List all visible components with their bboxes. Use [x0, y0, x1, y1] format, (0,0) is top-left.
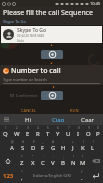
staticText: RUN [70, 108, 79, 113]
staticText: C [41, 159, 45, 167]
button[interactable]: Record target [41, 50, 63, 59]
staticText: E [26, 130, 30, 138]
staticText: 7 [68, 126, 70, 130]
staticText: H [61, 144, 66, 152]
staticText: ) [93, 140, 94, 144]
staticText: Please fill the call Sequence for| [3, 8, 100, 18]
staticText: D [31, 144, 36, 152]
button[interactable]: Hi [12, 114, 43, 125]
button[interactable]: Backspace [88, 153, 103, 168]
staticText: 6 [57, 126, 59, 130]
staticText: L [91, 144, 95, 152]
staticText: 10:45 [90, 1, 101, 6]
staticText: A [10, 144, 14, 152]
staticText: N [71, 159, 76, 167]
button[interactable]: Skype To Go [1, 26, 102, 43]
staticText: $ [33, 140, 35, 144]
staticText: ° [21, 169, 23, 174]
button[interactable]: Number to call [0, 65, 103, 85]
staticText: 4 [37, 126, 39, 130]
staticText: F [41, 144, 45, 152]
staticText: W [14, 130, 20, 138]
staticText: G [51, 144, 56, 152]
staticText: 9 [88, 126, 90, 130]
staticText: S [21, 144, 25, 152]
button[interactable]: $ [28, 139, 38, 153]
staticText: 5 [47, 126, 49, 130]
button[interactable]: 4 [33, 125, 43, 139]
staticText: ; [63, 155, 64, 159]
button[interactable]: " [27, 153, 38, 168]
button[interactable]: : [48, 153, 58, 168]
staticText: 3 [27, 126, 29, 130]
staticText: ' [43, 155, 44, 159]
button[interactable]: Ciao [43, 114, 73, 125]
staticText: _ [42, 140, 44, 144]
button[interactable]: 5 [43, 125, 53, 139]
staticText: * [21, 155, 23, 159]
staticText: Italia [17, 39, 25, 43]
staticText: P [96, 130, 100, 138]
staticText: Q [3, 130, 8, 138]
button[interactable]: Shift [0, 153, 16, 168]
staticText: @ [11, 140, 14, 144]
button[interactable]: 123 [0, 168, 17, 183]
button[interactable]: Keyboard options [0, 114, 12, 125]
button[interactable]: 2 [11, 125, 22, 139]
staticText: Skype To Go [17, 27, 46, 34]
staticText: 1 [5, 126, 7, 130]
staticText: B [61, 159, 65, 167]
staticText: K [81, 144, 85, 152]
staticText: ( [83, 140, 84, 144]
button[interactable]: Comma [17, 168, 27, 183]
staticText: M [80, 159, 86, 167]
button[interactable]: ; [58, 153, 68, 168]
staticText: # [22, 140, 24, 144]
button[interactable]: 0 [93, 125, 103, 139]
staticText: X [31, 159, 35, 167]
button[interactable]: Caar [73, 114, 103, 125]
staticText: / [81, 169, 83, 174]
button[interactable]: @ [6, 139, 17, 153]
button[interactable]: ( [78, 139, 88, 153]
button[interactable]: RUN [51, 106, 97, 114]
staticText: 123 [3, 172, 14, 180]
staticText: Ciao [52, 116, 65, 124]
staticText: + [72, 140, 74, 144]
staticText: . [81, 174, 83, 182]
staticText: Z [20, 159, 24, 167]
button[interactable]: ! [68, 153, 78, 168]
button[interactable]: ' [38, 153, 48, 168]
button[interactable]: 7 [63, 125, 73, 139]
staticText: V [51, 159, 55, 167]
staticText: - [63, 140, 64, 144]
button[interactable]: ) [88, 139, 98, 153]
button[interactable]: * [16, 153, 27, 168]
staticText: T [46, 130, 50, 138]
staticText: Hi [25, 116, 31, 124]
button[interactable]: Period [77, 168, 87, 183]
staticText: & [52, 140, 55, 144]
staticText: Number to call [11, 66, 61, 76]
staticText: ? [82, 155, 84, 159]
button[interactable]: 3 [22, 125, 33, 139]
button[interactable]: + [68, 139, 78, 153]
staticText: CANCEL [21, 108, 37, 113]
button[interactable]: Enter [87, 168, 103, 183]
staticText: Italiano/English (UK) [33, 173, 72, 178]
staticText: Skype To Go [3, 19, 26, 24]
button[interactable]: _ [38, 139, 48, 153]
button[interactable]: - [58, 139, 68, 153]
staticText: Type number or Search [3, 77, 47, 82]
button[interactable]: ? [78, 153, 88, 168]
button[interactable]: Record target [41, 91, 63, 100]
button[interactable]: CANCEL [6, 106, 51, 114]
staticText: 0 [97, 126, 99, 130]
button[interactable]: 9 [83, 125, 93, 139]
button[interactable]: # [17, 139, 28, 153]
button[interactable]: 1 [0, 125, 11, 139]
button[interactable]: 8 [73, 125, 83, 139]
button[interactable]: Italiano/English (UK) [27, 168, 77, 183]
button[interactable]: 6 [53, 125, 63, 139]
button[interactable]: & [48, 139, 58, 153]
